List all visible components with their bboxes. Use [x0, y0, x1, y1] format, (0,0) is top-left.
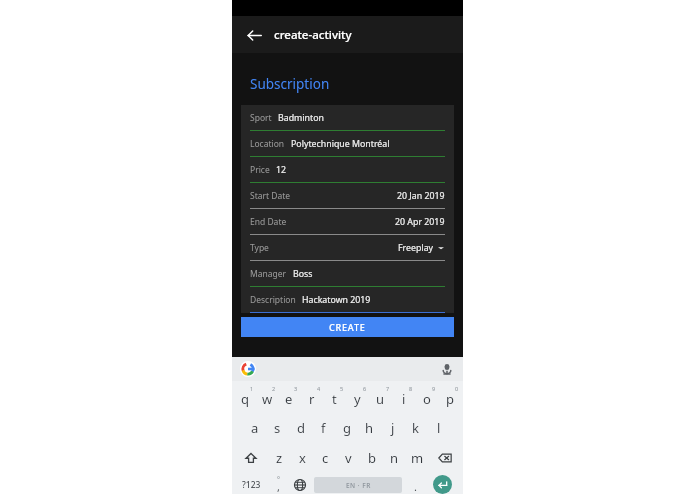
staticText: i [402, 390, 406, 408]
staticText: u [376, 390, 385, 408]
button[interactable]: j [381, 414, 404, 441]
button[interactable]: b [360, 444, 383, 471]
staticText: 1 [250, 385, 254, 392]
button[interactable]: Backspace [429, 444, 461, 471]
staticText: d [297, 419, 305, 437]
button[interactable]: Comma [268, 475, 288, 494]
button[interactable]: CREATE [241, 317, 454, 337]
staticText: x [299, 449, 306, 467]
staticText: c [322, 449, 329, 467]
staticText: k [412, 419, 419, 437]
button[interactable]: f [312, 414, 335, 441]
button[interactable]: ?123 [235, 475, 268, 494]
button[interactable]: Location [250, 131, 445, 157]
staticText: Subscription [250, 75, 330, 93]
button[interactable]: u [369, 384, 392, 411]
button[interactable]: l [427, 414, 450, 441]
staticText: 3 [294, 385, 298, 392]
staticText: 5 [340, 385, 344, 392]
staticText: 12 [276, 164, 287, 176]
staticText: 8 [409, 385, 413, 392]
button[interactable]: x [291, 444, 314, 471]
staticText: 9 [432, 385, 436, 392]
button[interactable]: Start Date [250, 183, 445, 209]
staticText: ° [277, 475, 280, 485]
staticText: 0 [455, 385, 459, 392]
button[interactable]: r [300, 384, 323, 411]
staticText: f [321, 419, 326, 437]
button[interactable]: Type [250, 235, 445, 261]
staticText: Hackatown 2019 [302, 294, 371, 306]
staticText: . [414, 479, 417, 494]
button[interactable]: d [289, 414, 312, 441]
button[interactable]: c [314, 444, 337, 471]
staticText: 7 [386, 385, 390, 392]
button[interactable]: e [278, 384, 300, 411]
staticText: m [411, 449, 424, 467]
staticText: Description [250, 294, 296, 306]
button[interactable]: Space [314, 477, 402, 493]
staticText: g [343, 419, 351, 437]
staticText: j [391, 419, 395, 437]
staticText: create-activity [274, 27, 352, 43]
staticText: 4 [317, 385, 321, 392]
button[interactable]: i [392, 384, 415, 411]
button[interactable]: Enter [433, 475, 452, 494]
button[interactable]: t [323, 384, 346, 411]
button[interactable]: v [337, 444, 360, 471]
button[interactable]: Manager [250, 261, 445, 287]
button[interactable]: y [346, 384, 369, 411]
button[interactable]: Sport [250, 105, 445, 131]
button[interactable]: Google [240, 361, 256, 377]
button[interactable]: g [335, 414, 358, 441]
staticText: ?123 [242, 479, 261, 491]
button[interactable]: Price [250, 157, 445, 183]
button[interactable]: Back [241, 22, 267, 48]
staticText: Badminton [278, 112, 324, 124]
staticText: 6 [363, 385, 367, 392]
staticText: v [345, 449, 352, 467]
staticText: EN · FR [346, 481, 371, 490]
button[interactable]: w [256, 384, 278, 411]
staticText: e [285, 390, 293, 408]
button[interactable]: n [383, 444, 406, 471]
staticText: n [390, 449, 399, 467]
staticText: s [274, 419, 281, 437]
staticText: a [251, 419, 259, 437]
button[interactable]: z [267, 444, 291, 471]
staticText: y [354, 390, 361, 408]
button[interactable]: Voice input [438, 360, 456, 378]
staticText: Manager [250, 268, 287, 280]
staticText: 20 Apr 2019 [395, 216, 445, 228]
staticText: Location [250, 138, 285, 150]
staticText: z [276, 449, 283, 467]
button[interactable]: m [406, 444, 429, 471]
staticText: Freeplay [398, 242, 434, 254]
button[interactable]: q [234, 384, 256, 411]
staticText: b [368, 449, 376, 467]
staticText: w [262, 390, 273, 408]
button[interactable]: Description [250, 287, 445, 313]
button[interactable]: Shift [234, 444, 267, 471]
staticText: Start Date [250, 190, 291, 202]
staticText: 20 Jan 2019 [397, 190, 445, 202]
staticText: h [365, 419, 374, 437]
staticText: t [332, 390, 337, 408]
staticText: o [423, 390, 431, 408]
button[interactable]: a [244, 414, 266, 441]
staticText: Type [250, 242, 269, 254]
button[interactable]: End Date [250, 209, 445, 235]
button[interactable]: o [415, 384, 438, 411]
button[interactable]: k [404, 414, 427, 441]
staticText: l [437, 419, 441, 437]
staticText: , [277, 479, 280, 494]
button[interactable]: s [266, 414, 289, 441]
button[interactable]: Period [405, 475, 425, 494]
button[interactable]: Change language [288, 475, 311, 494]
staticText: Price [250, 164, 270, 176]
button[interactable]: h [358, 414, 381, 441]
staticText: End Date [250, 216, 287, 228]
staticText: p [446, 390, 454, 408]
staticText: Polytechnique Montréal [291, 138, 390, 150]
button[interactable]: p [438, 384, 461, 411]
